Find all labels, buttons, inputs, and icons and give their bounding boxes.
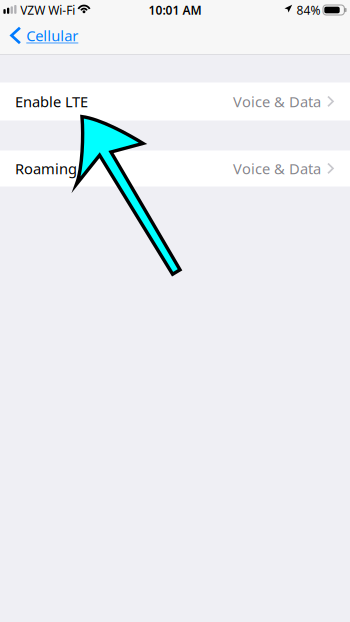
staticText: 84% [296,2,320,18]
staticText: Cellular [26,26,78,45]
staticText: Voice & Data [233,159,321,178]
button[interactable]: Roaming [0,150,350,186]
staticText: Enable LTE [15,92,88,111]
staticText: Roaming [15,159,77,178]
button[interactable]: Cellular [0,20,88,54]
staticText: VZW Wi-Fi [20,2,75,18]
staticText: Voice & Data [233,92,321,111]
button[interactable]: Enable LTE [0,82,350,120]
staticText: 10:01 AM [148,2,201,18]
